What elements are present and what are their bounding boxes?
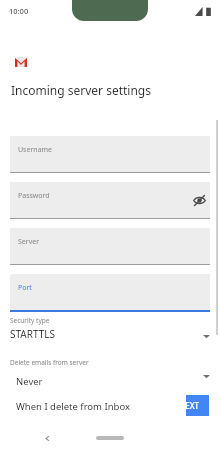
button[interactable]: Delete emails from server — [10, 358, 210, 392]
staticText: Username — [18, 145, 53, 155]
button[interactable]: NEXT — [169, 395, 209, 416]
staticText: Incoming server settings — [11, 82, 151, 98]
staticText: Security type — [10, 316, 50, 325]
button[interactable]: Server — [10, 228, 210, 266]
staticText: NEXT — [179, 400, 200, 411]
button[interactable]: Never — [8, 369, 186, 394]
staticText: Password — [18, 191, 50, 201]
staticText: Delete emails from server — [10, 358, 89, 367]
staticText: When I delete from Inbox — [16, 400, 130, 413]
staticText: STARTTLS — [10, 327, 56, 341]
staticText: 10:00 — [9, 6, 29, 16]
button[interactable]: Password — [10, 182, 210, 220]
button[interactable]: Username — [10, 136, 210, 174]
button[interactable]: Port — [10, 274, 210, 312]
button[interactable]: Security type — [10, 316, 210, 350]
staticText: Port — [18, 283, 32, 293]
staticText: Server — [18, 237, 40, 247]
button[interactable]: Toggle password visibility — [188, 189, 210, 211]
button[interactable]: Back — [44, 435, 51, 442]
button[interactable]: When I delete from Inbox — [8, 394, 186, 418]
staticText: Never — [16, 375, 43, 388]
button[interactable]: Home — [96, 436, 124, 440]
